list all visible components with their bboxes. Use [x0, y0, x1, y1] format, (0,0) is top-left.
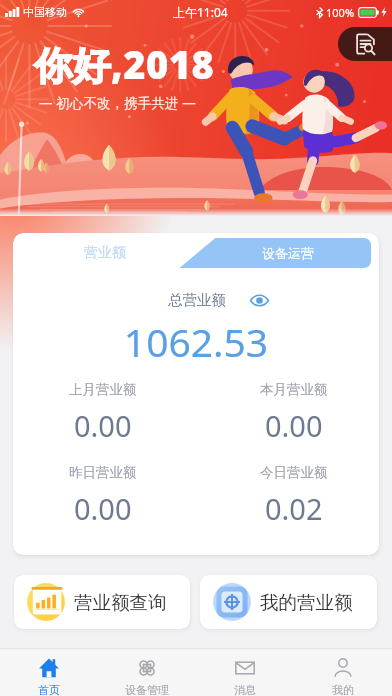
staticText: 今日营业额 [260, 464, 328, 481]
staticText: 我的营业额 [260, 591, 353, 614]
staticText: 0.00 [74, 406, 132, 445]
button[interactable]: 营业额 [13, 238, 196, 268]
staticText: 营业额查询 [74, 591, 167, 614]
staticText: 设备管理 [125, 683, 169, 696]
button[interactable]: 设备运营 [196, 238, 379, 268]
staticText: 1062.53 [13, 315, 379, 368]
staticText: 本月营业额 [260, 381, 328, 398]
staticText: 上月营业额 [69, 381, 137, 398]
staticText: 0.00 [265, 406, 323, 445]
button[interactable]: 消息 [196, 649, 294, 696]
staticText: 0.00 [74, 489, 132, 528]
button[interactable]: 营业额查询 [14, 575, 190, 629]
button[interactable]: 订单查询 [338, 27, 392, 61]
staticText: 营业额 [84, 244, 126, 262]
staticText: 0.02 [265, 489, 323, 528]
staticText: 昨日营业额 [69, 464, 137, 481]
staticText: 消息 [234, 683, 256, 696]
staticText: 100% [326, 5, 355, 20]
button[interactable]: 我的营业额 [200, 575, 377, 629]
staticText: 中国移动 [23, 5, 67, 19]
staticText: 上午11:04 [173, 4, 228, 20]
button[interactable]: 显示或隐藏营业额 [249, 290, 269, 310]
staticText: 首页 [38, 683, 60, 696]
staticText: — 初心不改，携手共进 — [39, 94, 196, 112]
button[interactable]: 我的 [294, 649, 392, 696]
button[interactable]: 设备管理 [98, 649, 196, 696]
staticText: 你好,2018 [34, 38, 215, 90]
staticText: 总营业额 [168, 291, 226, 309]
staticText: 设备运营 [262, 245, 314, 261]
staticText: 我的 [332, 683, 354, 696]
button[interactable]: 首页 [0, 649, 98, 696]
